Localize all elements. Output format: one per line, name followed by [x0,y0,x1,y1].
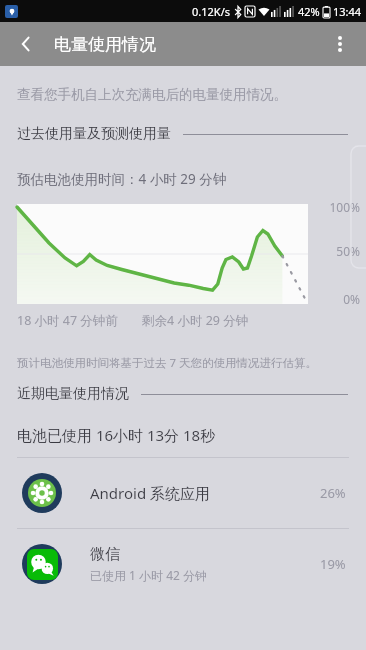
staticText: 0% [343,291,360,307]
button[interactable]: 微信 [0,529,366,599]
staticText: 26% [320,484,346,502]
staticText: 近期电量使用情况 [17,385,129,403]
staticText: 0.12K/s [192,4,230,19]
staticText: 13:44 [333,4,362,19]
button[interactable]: More options [320,24,360,64]
staticText: 预估电池使用时间：4 小时 29 分钟 [17,170,227,188]
staticText: 19% [320,555,346,573]
staticText: 50% [336,243,360,259]
staticText: 预计电池使用时间将基于过去 7 天您的使用情况进行估算。 [17,355,318,371]
staticText: 18 小时 47 分钟前 [17,312,118,329]
staticText: 剩余4 小时 29 分钟 [142,312,249,329]
button[interactable]: Back [8,26,44,62]
staticText: 电量使用情况 [54,34,156,55]
staticText: 微信 [90,545,120,564]
staticText: Android 系统应用 [90,483,211,503]
staticText: 过去使用量及预测使用量 [17,125,171,143]
staticText: 已使用 1 小时 42 分钟 [90,567,208,583]
button[interactable]: Android 系统应用 [0,458,366,528]
staticText: 电池已使用 16小时 13分 18秒 [17,425,216,445]
staticText: 42% [298,4,320,19]
staticText: 查看您手机自上次充满电后的电量使用情况。 [17,86,287,103]
staticText: 100% [329,199,360,215]
